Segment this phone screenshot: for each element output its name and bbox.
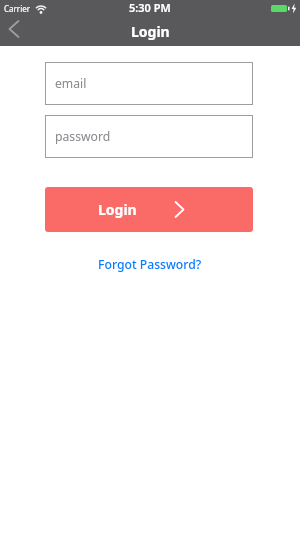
button[interactable]: password	[45, 115, 253, 158]
button[interactable]: email	[45, 62, 253, 105]
staticText: Login	[131, 22, 170, 41]
button[interactable]	[8, 20, 20, 38]
staticText: email	[55, 75, 87, 92]
staticText: 5:30 PM	[129, 0, 171, 15]
button[interactable]: Forgot Password?	[96, 254, 204, 275]
staticText: Carrier	[4, 3, 31, 14]
button[interactable]: Login	[45, 187, 253, 232]
staticText: Login	[98, 200, 137, 219]
staticText: password	[55, 128, 111, 145]
